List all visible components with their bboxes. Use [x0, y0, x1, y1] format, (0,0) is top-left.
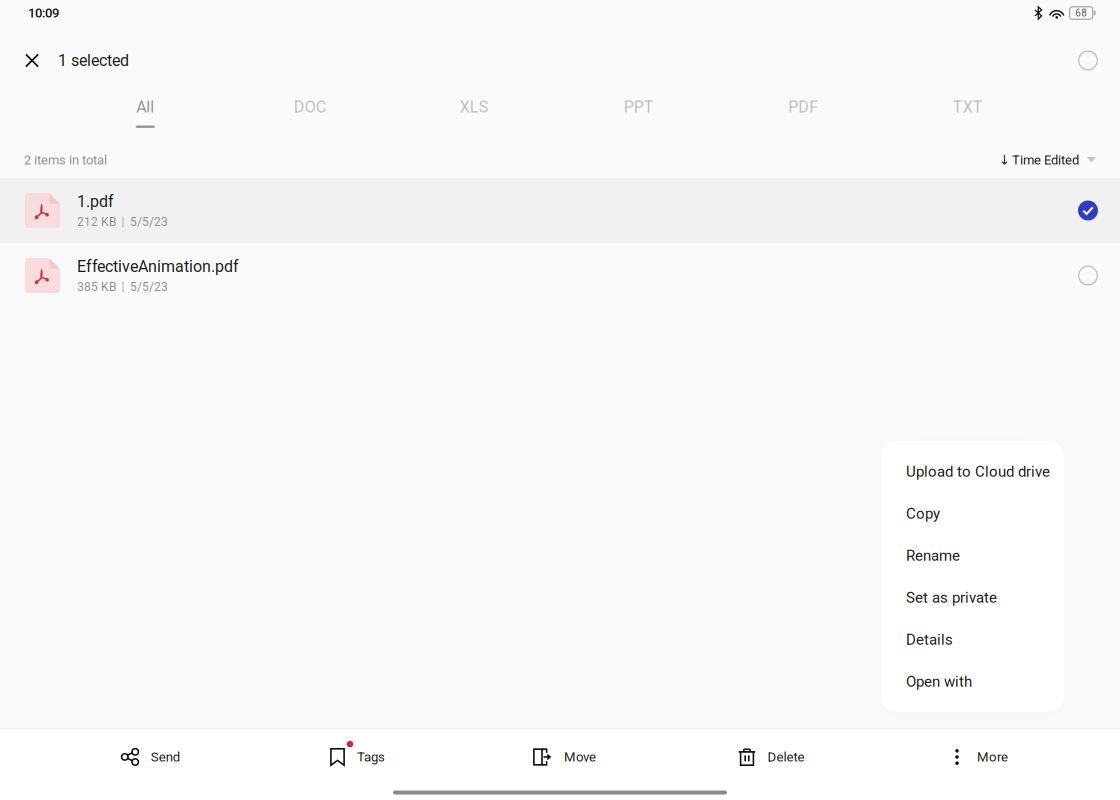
- button[interactable]: Select all: [1067, 39, 1109, 81]
- staticText: TXT: [953, 98, 983, 116]
- button[interactable]: 1.pdf: [0, 178, 1120, 243]
- staticText: Delete: [767, 749, 804, 765]
- staticText: XLS: [460, 98, 489, 116]
- staticText: 68: [1075, 7, 1087, 19]
- staticText: 385 KB: [77, 280, 116, 294]
- staticText: Details: [906, 631, 953, 648]
- staticText: More: [977, 749, 1008, 765]
- button[interactable]: XLS: [392, 95, 556, 142]
- staticText: 2 items in total: [24, 152, 107, 168]
- staticText: 5/5/23: [130, 280, 168, 294]
- button[interactable]: All: [63, 95, 227, 142]
- staticText: DOC: [294, 98, 326, 116]
- button[interactable]: EffectiveAnimation.pdf: [0, 243, 1120, 308]
- button[interactable]: DOC: [227, 95, 392, 142]
- button[interactable]: Copy: [881, 492, 1064, 534]
- button[interactable]: TXT: [885, 95, 1050, 142]
- staticText: Copy: [906, 505, 940, 522]
- staticText: 1.pdf: [77, 192, 114, 211]
- staticText: EffectiveAnimation.pdf: [77, 257, 239, 276]
- staticText: PDF: [788, 98, 818, 116]
- button[interactable]: PPT: [556, 95, 721, 142]
- staticText: All: [136, 98, 154, 116]
- button[interactable]: Rename: [881, 534, 1064, 576]
- staticText: Move: [564, 749, 596, 765]
- staticText: PPT: [624, 98, 654, 116]
- staticText: Set as private: [906, 589, 997, 606]
- staticText: Upload to Cloud drive: [906, 463, 1050, 480]
- staticText: 5/5/23: [130, 215, 168, 229]
- button[interactable]: More: [870, 729, 1077, 785]
- button[interactable]: Open with: [881, 660, 1064, 702]
- staticText: 212 KB: [77, 215, 116, 229]
- button[interactable]: Delete: [663, 729, 870, 785]
- staticText: Tags: [357, 749, 385, 765]
- button[interactable]: Move: [456, 729, 663, 785]
- staticText: 10:09: [28, 5, 59, 21]
- button[interactable]: Close: [14, 42, 50, 78]
- staticText: ↓: [999, 152, 1010, 167]
- staticText: Rename: [906, 547, 960, 564]
- button[interactable]: ↓: [991, 145, 1104, 175]
- button[interactable]: Upload to Cloud drive: [881, 450, 1064, 492]
- button[interactable]: Set as private: [881, 576, 1064, 618]
- button[interactable]: PDF: [721, 95, 885, 142]
- button[interactable]: Tags: [249, 729, 456, 785]
- staticText: Send: [151, 749, 180, 765]
- staticText: Time Edited: [1012, 152, 1079, 168]
- button[interactable]: Details: [881, 618, 1064, 660]
- button[interactable]: Send: [42, 729, 249, 785]
- staticText: 1 selected: [58, 51, 129, 70]
- staticText: Open with: [906, 673, 972, 690]
